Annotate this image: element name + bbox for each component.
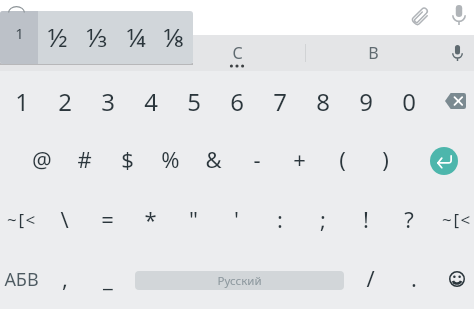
staticText: ½ [47,19,68,54]
staticText: , [62,263,68,293]
staticText: @ [32,144,52,174]
button[interactable]: АБВ [0,251,43,309]
staticText: * [144,204,157,234]
staticText: ' [234,204,239,234]
button[interactable]: ; [301,191,344,251]
button[interactable]: @ [20,131,63,191]
staticText: # [77,144,92,174]
staticText: : [277,204,283,234]
button[interactable]: . [392,251,435,309]
button[interactable]: Enter [430,147,458,175]
button[interactable]: - [235,131,278,191]
staticText: ~[< [442,208,472,231]
staticText: ? [404,204,414,234]
staticText: 1 [15,23,24,43]
button[interactable]: # [63,131,106,191]
button[interactable]: ? [387,191,430,251]
button[interactable]: ~[< [430,191,473,251]
button[interactable]: 0 [387,71,430,131]
button[interactable]: 1 [0,11,38,64]
staticText: 4 [144,85,158,118]
staticText: 6 [230,85,244,118]
button[interactable]: ) [364,131,407,191]
staticText: - [253,144,261,174]
staticText: & [205,144,222,174]
button[interactable]: % [149,131,192,191]
staticText: . [411,263,417,293]
staticText: 1 [15,85,29,118]
button[interactable]: Русский [135,271,344,290]
staticText: ~[< [7,208,37,231]
button[interactable]: В [305,35,441,71]
button[interactable]: 6 [215,71,258,131]
staticText: " [189,204,198,234]
button[interactable]: ¼ [116,11,155,64]
staticText: АБВ [4,267,39,292]
staticText: 7 [273,85,287,118]
staticText: ⅓ [86,19,108,54]
staticText: 2 [58,85,72,118]
staticText: 5 [187,85,201,118]
button[interactable]: ' [215,191,258,251]
staticText: В [368,42,379,64]
staticText: $ [121,144,134,174]
staticText: ! [363,204,369,234]
button[interactable]: С [169,35,305,71]
button[interactable]: 2 [43,71,86,131]
button[interactable]: = [86,191,129,251]
button[interactable]: 3 [86,71,129,131]
button[interactable]: / [349,251,392,309]
staticText: ⅛ [163,19,185,54]
button[interactable]: ⅓ [77,11,116,64]
staticText: С [232,42,243,64]
button[interactable]: * [129,191,172,251]
button[interactable]: 1 [0,71,43,131]
staticText: 8 [316,85,330,118]
staticText: ; [320,204,326,234]
button[interactable]: Attach file [407,2,435,30]
button[interactable]: & [192,131,235,191]
button[interactable]: ! [344,191,387,251]
button[interactable]: ( [321,131,364,191]
button[interactable]: ⅛ [155,11,193,64]
button[interactable]: Voice typing [443,39,471,67]
staticText: 0 [402,85,416,118]
button[interactable]: 7 [258,71,301,131]
button[interactable]: " [172,191,215,251]
staticText: % [161,144,180,174]
staticText: ) [382,144,389,174]
staticText: + [293,144,306,174]
button[interactable]: + [278,131,321,191]
button[interactable]: , [43,251,86,309]
staticText: _ [103,263,113,293]
button[interactable]: ½ [38,11,77,64]
button[interactable]: : [258,191,301,251]
staticText: 3 [101,85,115,118]
staticText: ¼ [126,19,146,54]
button[interactable]: 8 [301,71,344,131]
button[interactable]: 4 [129,71,172,131]
staticText: \ [60,204,69,234]
button[interactable]: Backspace [430,71,473,131]
staticText: Ф [94,42,108,64]
button[interactable]: Ф [33,35,169,71]
button[interactable]: 9 [344,71,387,131]
staticText: ( [339,144,346,174]
button[interactable]: Voice message [445,1,473,29]
staticText: = [101,204,114,234]
button[interactable]: $ [106,131,149,191]
button[interactable]: 5 [172,71,215,131]
button[interactable]: \ [43,191,86,251]
button[interactable]: ~[< [0,191,43,251]
button[interactable]: Emoji [435,251,474,309]
staticText: / [366,263,375,293]
staticText: Русский [217,273,262,289]
staticText: 9 [359,85,373,118]
button[interactable]: _ [86,251,129,309]
